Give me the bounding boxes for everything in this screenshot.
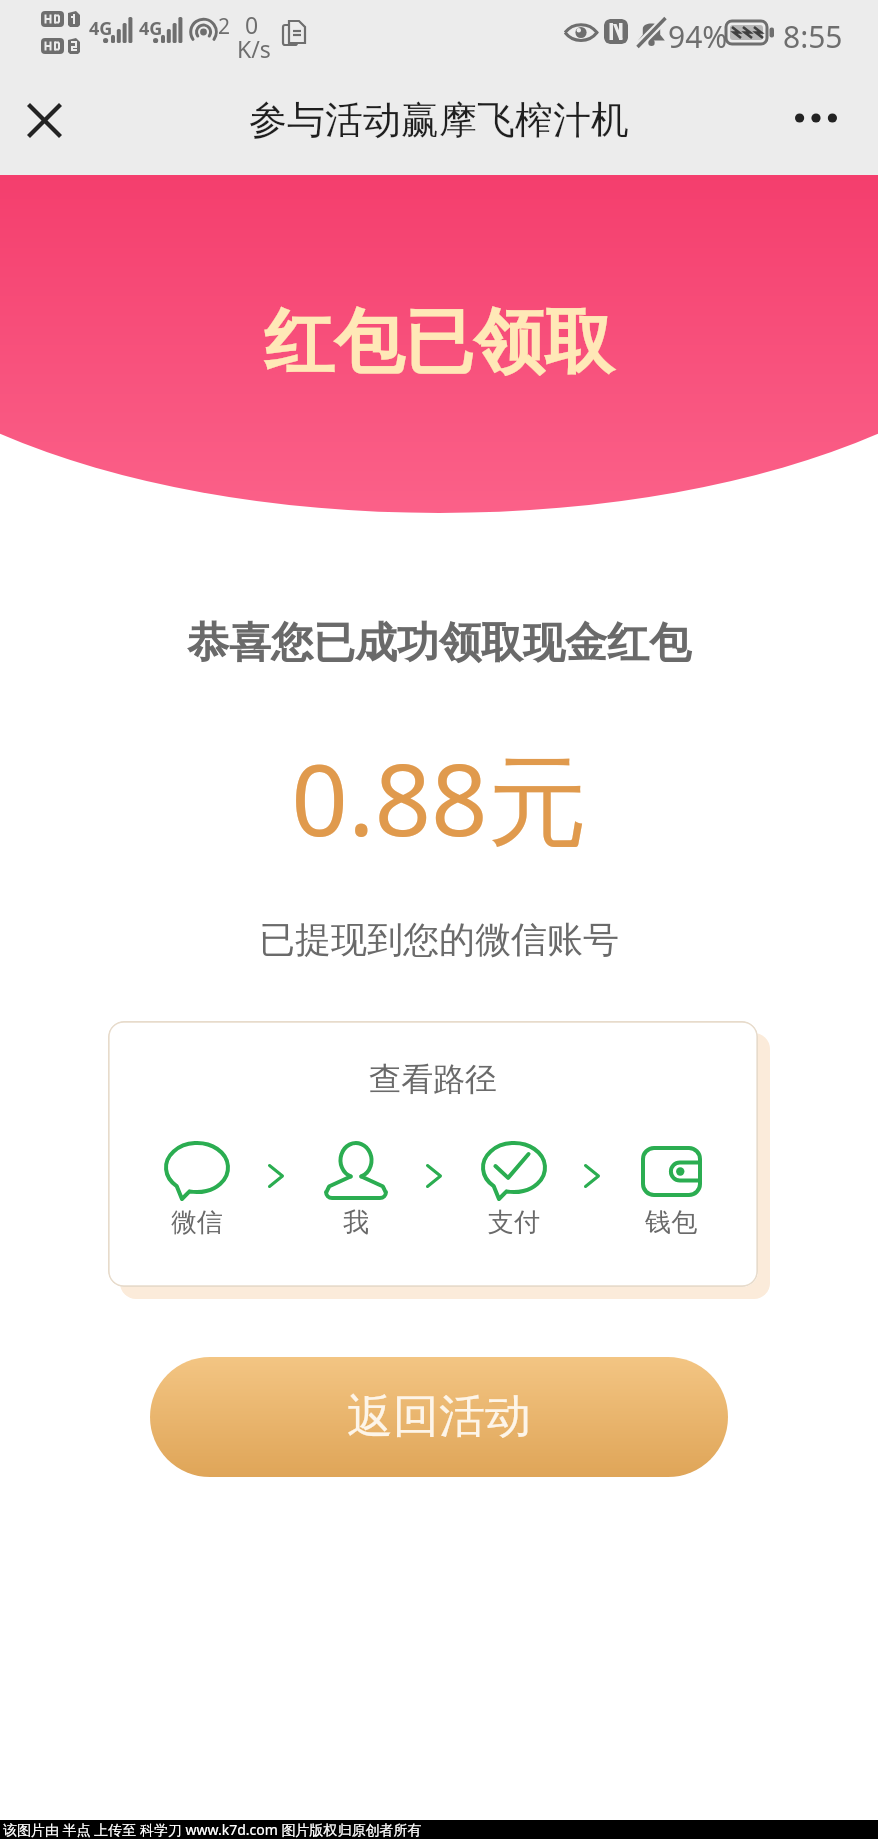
button[interactable]: Close	[14, 88, 74, 148]
staticText: 恭喜您已成功领取现金红包	[0, 617, 878, 670]
staticText: 0	[245, 9, 259, 40]
staticText: 0.88元	[0, 730, 878, 865]
staticText: 钱包	[621, 1206, 721, 1239]
button[interactable]: 返回活动	[150, 1357, 728, 1477]
staticText: K/s	[237, 33, 271, 64]
staticText: 返回活动	[347, 1388, 531, 1446]
staticText: 红包已领取	[0, 299, 878, 387]
staticText: 我	[306, 1206, 406, 1239]
button[interactable]: More options	[786, 88, 846, 148]
staticText: 支付	[464, 1206, 564, 1239]
staticText: 4G	[89, 16, 113, 41]
staticText: 4G	[139, 16, 163, 41]
staticText: 94%	[668, 16, 728, 57]
staticText: 参与活动赢摩飞榨汁机	[0, 96, 878, 144]
staticText: 微信	[147, 1206, 247, 1239]
staticText: 已提现到您的微信账号	[0, 917, 878, 962]
staticText: 8:55	[783, 16, 843, 57]
staticText: 2	[218, 12, 231, 41]
staticText: 该图片由 半点 上传至 科学刀 www.k7d.com 图片版权归原创者所有	[3, 1820, 422, 1839]
staticText: 查看路径	[108, 1059, 758, 1099]
